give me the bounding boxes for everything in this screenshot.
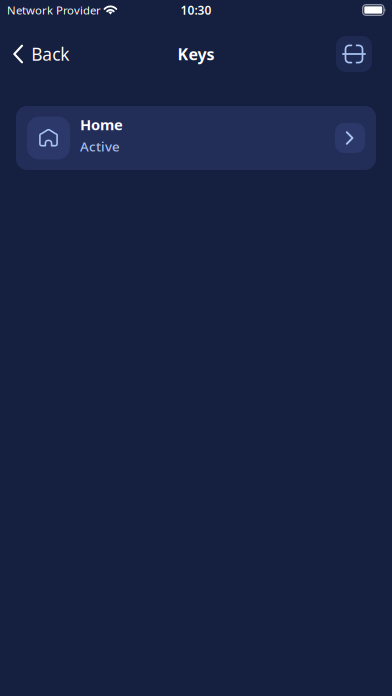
staticText: Home	[80, 115, 123, 134]
button[interactable]: Back	[0, 20, 79, 88]
staticText: Network Provider	[7, 2, 101, 18]
button[interactable]: Scan QR code	[336, 36, 372, 72]
button[interactable]: Home	[16, 106, 376, 170]
staticText: 10:30	[180, 2, 211, 18]
staticText: Back	[31, 42, 69, 65]
staticText: Keys	[177, 43, 214, 65]
staticText: Active	[80, 137, 120, 155]
